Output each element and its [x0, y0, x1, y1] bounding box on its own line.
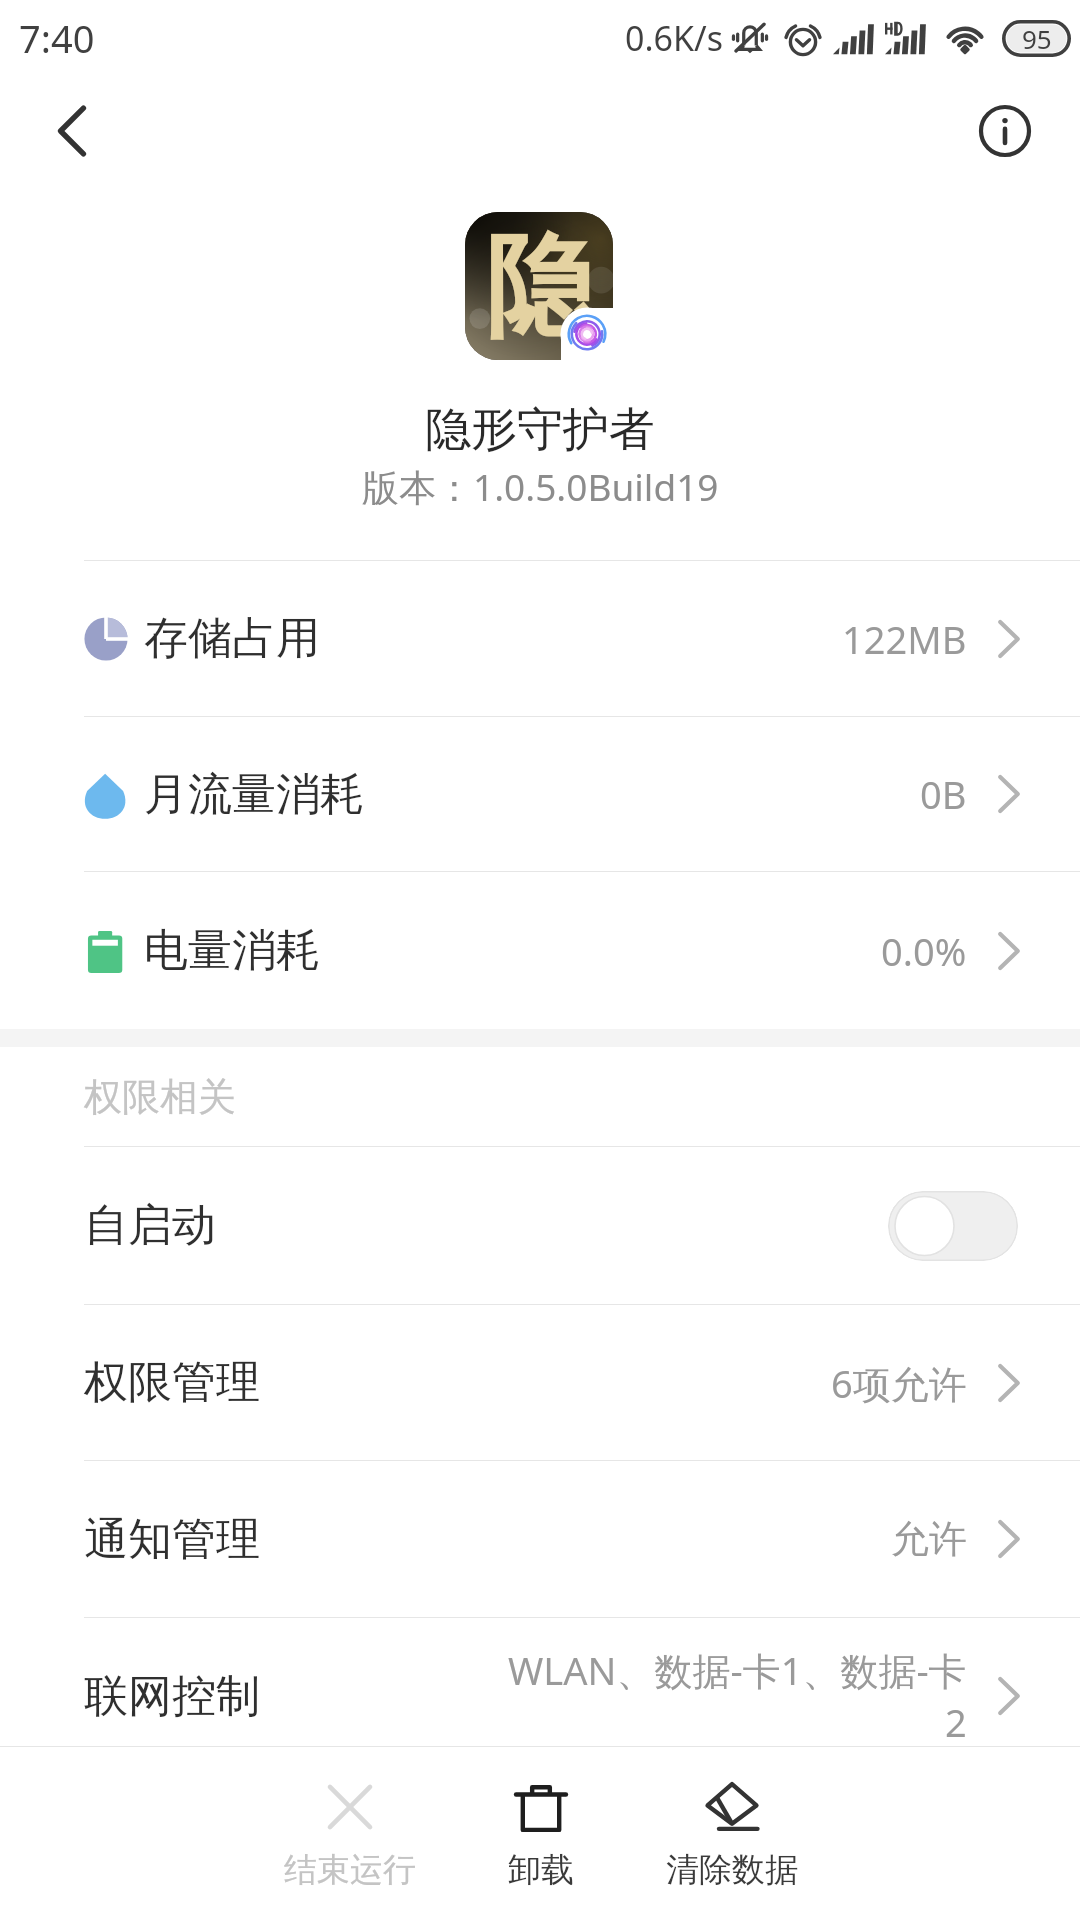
button[interactable]: 存储占用: [0, 561, 1080, 716]
button[interactable]: Back: [32, 91, 112, 171]
staticText: 隐: [485, 217, 597, 358]
staticText: 0.6K/s: [625, 15, 723, 61]
staticText: 隐形守护者: [425, 401, 655, 459]
staticText: 卸载: [508, 1849, 574, 1891]
staticText: 允许: [891, 1515, 967, 1563]
button[interactable]: 月流量消耗: [0, 717, 1080, 871]
staticText: 结束运行: [284, 1849, 416, 1891]
staticText: 0.0%: [881, 925, 967, 977]
staticText: 7:40: [19, 12, 95, 64]
button[interactable]: 自启动 toggle: [888, 1191, 1018, 1261]
button[interactable]: 通知管理: [0, 1461, 1080, 1617]
button[interactable]: 清除数据: [636, 1747, 827, 1920]
staticText: 自启动: [84, 1198, 216, 1253]
staticText: 通知管理: [84, 1512, 260, 1567]
button[interactable]: 自启动: [0, 1147, 1080, 1304]
staticText: 2: [945, 1696, 967, 1748]
staticText: 电量消耗: [144, 923, 320, 978]
staticText: WLAN、数据-卡1、数据-卡: [508, 1644, 967, 1696]
button[interactable]: 卸载: [445, 1747, 636, 1920]
button[interactable]: App info: [967, 93, 1043, 169]
staticText: 联网控制: [84, 1669, 260, 1724]
staticText: 存储占用: [144, 611, 320, 666]
staticText: 122MB: [842, 613, 967, 665]
button[interactable]: 联网控制: [0, 1618, 1080, 1774]
button[interactable]: 电量消耗: [0, 872, 1080, 1029]
button[interactable]: 权限管理: [0, 1305, 1080, 1460]
button[interactable]: 结束运行: [254, 1747, 445, 1920]
staticText: 95: [1022, 21, 1052, 56]
staticText: 权限相关: [84, 1073, 236, 1121]
staticText: 0B: [920, 768, 967, 820]
staticText: 权限管理: [84, 1355, 260, 1410]
staticText: 月流量消耗: [144, 767, 364, 822]
staticText: 清除数据: [666, 1849, 798, 1891]
staticText: 版本：1.0.5.0Build19: [362, 461, 719, 512]
staticText: 6项允许: [831, 1357, 967, 1409]
